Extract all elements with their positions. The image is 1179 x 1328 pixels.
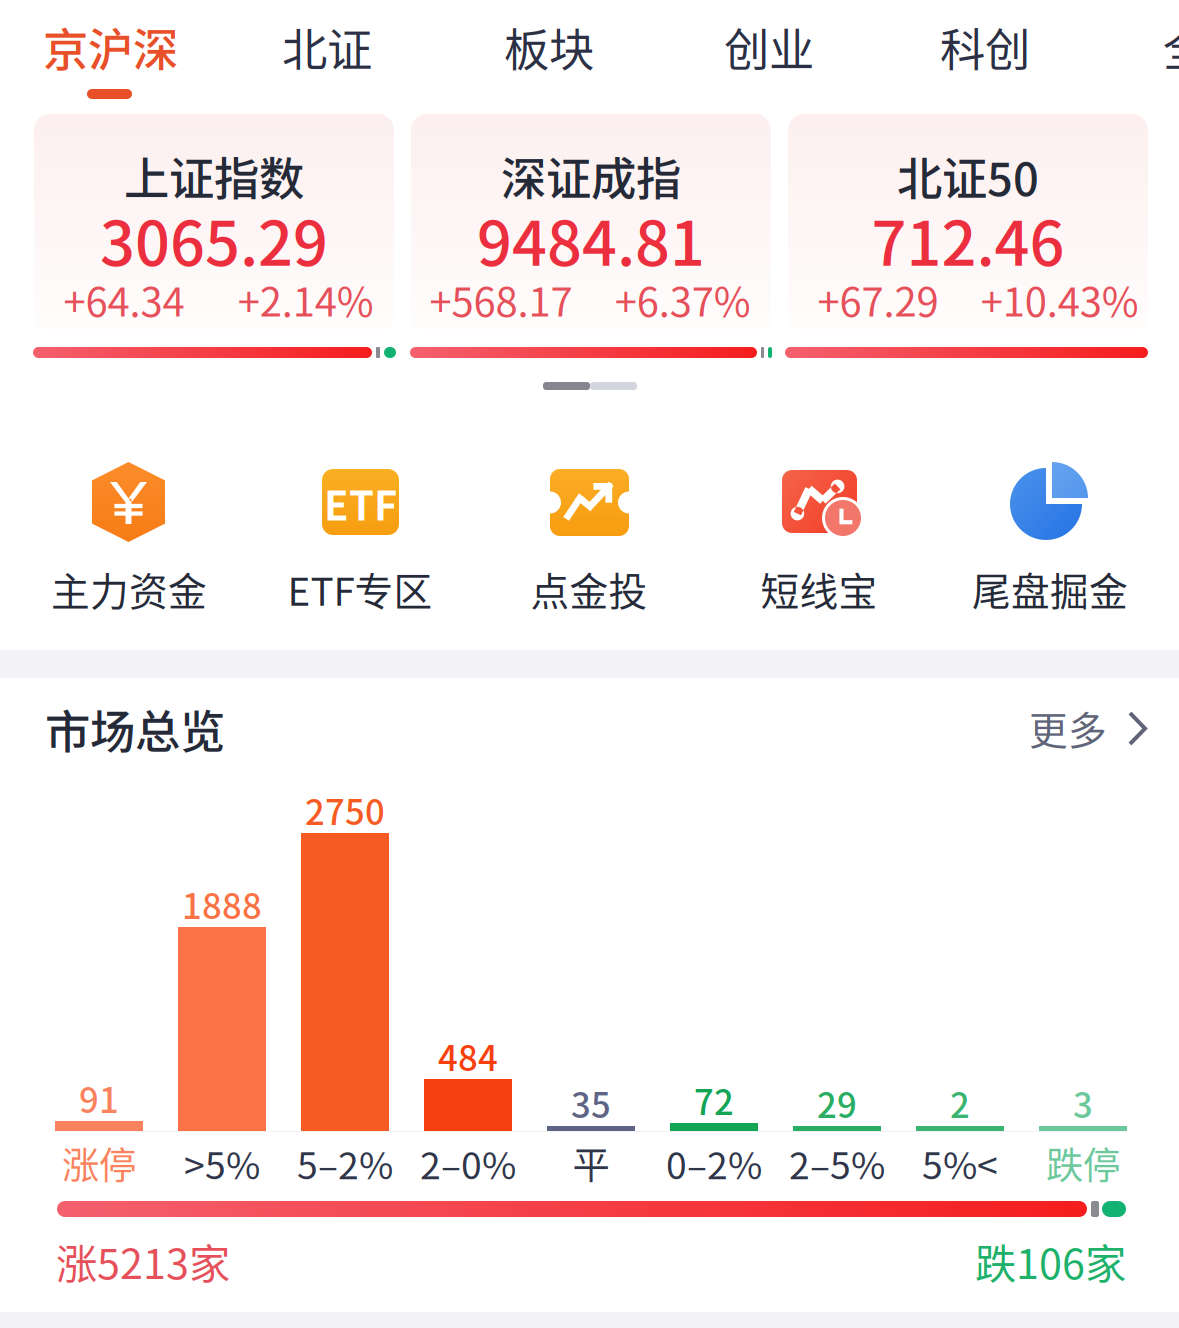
staticText: 上证指数: [124, 143, 304, 209]
button[interactable]: 短线宝: [0, 0, 1179, 1328]
button[interactable]: 板块: [0, 0, 1179, 1328]
staticText: 2–0%: [420, 1136, 516, 1190]
staticText: 5–2%: [297, 1136, 393, 1190]
staticText: 更多: [1029, 700, 1107, 756]
staticText: 北证: [282, 14, 372, 80]
button[interactable]: 京沪深: [0, 0, 1179, 1328]
staticText: >5%: [184, 1136, 260, 1190]
staticText: 72: [694, 1075, 734, 1125]
staticText: +67.29: [817, 270, 938, 328]
staticText: 2: [950, 1078, 970, 1128]
staticText: 市场总览: [45, 696, 225, 762]
button[interactable]: 深证成指: [0, 0, 1179, 1328]
staticText: +568.17: [429, 270, 572, 328]
staticText: 京沪深: [43, 14, 178, 80]
button[interactable]: 科创: [0, 0, 1179, 1328]
staticText: 全: [1163, 14, 1179, 80]
staticText: 平: [572, 1136, 609, 1190]
staticText: 1888: [182, 879, 262, 929]
staticText: 712.46: [871, 195, 1064, 283]
staticText: +64.34: [63, 270, 184, 328]
staticText: 3: [1073, 1078, 1093, 1128]
staticText: 科创: [940, 14, 1030, 80]
staticText: +2.14%: [238, 270, 374, 328]
button[interactable]: 点金投: [0, 0, 1179, 1328]
staticText: 91: [79, 1073, 119, 1123]
staticText: 尾盘掘金: [972, 561, 1128, 617]
button[interactable]: 北证: [0, 0, 1179, 1328]
staticText: +10.43%: [981, 270, 1139, 328]
staticText: 主力资金: [51, 561, 207, 617]
button[interactable]: 上证指数: [0, 0, 1179, 1328]
staticText: 3065.29: [100, 195, 328, 283]
staticText: 2–5%: [789, 1136, 885, 1190]
staticText: 5%<: [922, 1136, 998, 1190]
staticText: 点金投: [530, 561, 647, 617]
staticText: 跌停: [1046, 1136, 1120, 1190]
staticText: 35: [571, 1078, 611, 1128]
button[interactable]: ETF: [0, 0, 1179, 1328]
staticText: ETF: [324, 474, 397, 532]
staticText: 深证成指: [501, 143, 681, 209]
staticText: 涨停: [62, 1136, 136, 1190]
button[interactable]: 尾盘掘金: [0, 0, 1179, 1328]
staticText: 0–2%: [666, 1136, 762, 1190]
button[interactable]: 全: [0, 0, 1179, 1328]
staticText: 短线宝: [760, 561, 877, 617]
staticText: 跌106家: [975, 1231, 1126, 1291]
staticText: 创业: [724, 14, 814, 80]
button[interactable]: 主力资金: [0, 0, 1179, 1328]
button[interactable]: 创业: [0, 0, 1179, 1328]
staticText: ETF专区: [287, 561, 432, 617]
button[interactable]: 北证50: [0, 0, 1179, 1328]
staticText: 29: [817, 1078, 857, 1128]
staticText: 板块: [504, 14, 594, 80]
staticText: +6.37%: [615, 270, 751, 328]
staticText: 2750: [305, 785, 385, 835]
button[interactable]: 更多: [0, 0, 1179, 1328]
staticText: 484: [438, 1031, 498, 1081]
staticText: 涨5213家: [56, 1231, 230, 1291]
staticText: 北证50: [897, 143, 1039, 209]
staticText: 9484.81: [477, 195, 705, 283]
